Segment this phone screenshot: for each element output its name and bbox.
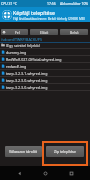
- staticText: (Egy szinttel feljebb): [6, 43, 40, 48]
- button[interactable]: (Egy szinttel feljebb): [0, 42, 90, 48]
- staticText: Zip telepítése: [54, 149, 77, 154]
- button[interactable]: RedWolf-027-Official-whyred.img: [0, 56, 90, 62]
- staticText: Fájl kiválasztása innen: Belső tárhely (…: [13, 17, 85, 21]
- staticText: Képfájl telepítése: [13, 9, 55, 16]
- staticText: twrp-3.2.3-1-whyred.img: [6, 71, 48, 76]
- staticText: Válasszon tárolót: [9, 149, 38, 154]
- button[interactable]: Zip telepítése: [46, 146, 84, 157]
- staticText: 17:56: [47, 1, 56, 6]
- staticText: CPU 31 °C: [1, 1, 17, 6]
- staticText: Akkumulátor 10%: [60, 1, 89, 6]
- staticText: dummy.img: [6, 50, 27, 55]
- button[interactable]: Előző: [30, 29, 58, 35]
- button[interactable]: twrp-3.2.3-0-whyred.img: [0, 84, 90, 90]
- staticText: Előző: [40, 30, 49, 35]
- button[interactable]: Back: [12, 166, 26, 180]
- staticText: twrp-3.2.3-0-whyred.img: [6, 78, 48, 83]
- button[interactable]: Belső: [60, 29, 88, 35]
- button[interactable]: twrp-3.2.3-0-whyred.img: [0, 77, 90, 83]
- button[interactable]: redwolf.img: [0, 63, 90, 69]
- button[interactable]: dummy.img: [0, 49, 90, 55]
- staticText: /sdcard/TWRP/BACKUPS: [1, 37, 42, 42]
- button[interactable]: Fel: [1, 29, 28, 35]
- button[interactable]: Válasszon tárolót: [5, 146, 42, 157]
- staticText: twrp-3.2.3-0-whyred.img: [6, 85, 48, 90]
- button[interactable]: Recents: [64, 166, 78, 180]
- button[interactable]: Zip telepítése: [46, 146, 84, 157]
- staticText: Fel: [15, 30, 20, 35]
- staticText: RedWolf-027-Official-whyred.img: [6, 57, 62, 62]
- staticText: Zip telepítése: [54, 149, 77, 154]
- button[interactable]: twrp-3.2.3-1-whyred.img: [0, 70, 90, 76]
- staticText: Belső: [70, 30, 79, 35]
- staticText: redwolf.img: [6, 64, 27, 69]
- button[interactable]: Home: [38, 166, 52, 180]
